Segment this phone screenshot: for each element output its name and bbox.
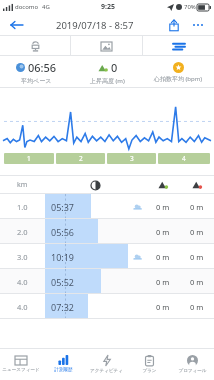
- staticText: アクティビティ: [90, 368, 123, 374]
- staticText: 05:52: [51, 276, 75, 288]
- button[interactable]: Achievements: [0, 36, 70, 56]
- button[interactable]: ニュースフィード: [0, 348, 42, 380]
- staticText: 3.0: [17, 252, 28, 262]
- staticText: 4G: [42, 3, 50, 11]
- button[interactable]: 心拍数平均 (bpm): [143, 56, 214, 88]
- button[interactable]: 0 m: [0, 244, 214, 269]
- staticText: 07:32: [51, 301, 75, 313]
- staticText: docomo: [15, 3, 39, 11]
- staticText: 0: [111, 60, 118, 75]
- staticText: 4.0: [17, 302, 28, 312]
- staticText: 0 m: [156, 202, 170, 212]
- staticText: 2019/07/18 - 8:57: [56, 19, 134, 32]
- staticText: 上昇高度 (m): [90, 77, 125, 85]
- button[interactable]: Share: [164, 15, 184, 35]
- staticText: 0 m: [190, 277, 204, 287]
- button[interactable]: 0 m: [0, 269, 214, 294]
- staticText: 計測履歴: [54, 367, 73, 373]
- staticText: 2.0: [17, 227, 28, 237]
- button[interactable]: 0: [72, 56, 143, 88]
- staticText: 06:56: [28, 60, 57, 75]
- button[interactable]: アクティビティ: [85, 348, 128, 380]
- button[interactable]: 0 m: [0, 294, 214, 319]
- staticText: 10:19: [51, 251, 75, 263]
- button[interactable]: プロフィール: [171, 348, 214, 380]
- button[interactable]: 0 m: [0, 219, 214, 244]
- button[interactable]: 06:56: [0, 56, 72, 88]
- staticText: 4.0: [17, 277, 28, 287]
- button[interactable]: Splits: [143, 36, 214, 56]
- staticText: 1: [27, 154, 31, 163]
- staticText: 0 m: [156, 227, 170, 237]
- staticText: プロフィール: [178, 368, 207, 374]
- staticText: 0 m: [190, 202, 204, 212]
- button[interactable]: More options: [188, 15, 208, 35]
- staticText: 0 m: [156, 302, 170, 312]
- button[interactable]: Back: [6, 15, 26, 35]
- staticText: 平均ペース: [21, 77, 52, 85]
- button[interactable]: Photos: [71, 36, 142, 56]
- staticText: 9:25: [101, 2, 115, 12]
- staticText: 1.0: [17, 202, 28, 212]
- button[interactable]: 0 m: [0, 194, 214, 219]
- staticText: 4: [182, 154, 186, 163]
- staticText: 0 m: [156, 277, 170, 287]
- staticText: 3: [130, 154, 134, 163]
- staticText: 05:56: [51, 226, 75, 238]
- staticText: km: [17, 180, 28, 190]
- staticText: プラン: [142, 368, 157, 374]
- staticText: 2: [79, 154, 83, 163]
- button[interactable]: 計測履歴: [42, 348, 85, 380]
- button[interactable]: プラン: [128, 348, 171, 380]
- staticText: 0 m: [190, 302, 204, 312]
- staticText: 70%: [184, 3, 196, 11]
- staticText: 05:37: [51, 201, 75, 213]
- staticText: 0 m: [190, 252, 204, 262]
- staticText: 0 m: [156, 252, 170, 262]
- staticText: 0 m: [190, 227, 204, 237]
- staticText: 心拍数平均 (bpm): [154, 75, 203, 83]
- staticText: ニュースフィード: [2, 367, 40, 373]
